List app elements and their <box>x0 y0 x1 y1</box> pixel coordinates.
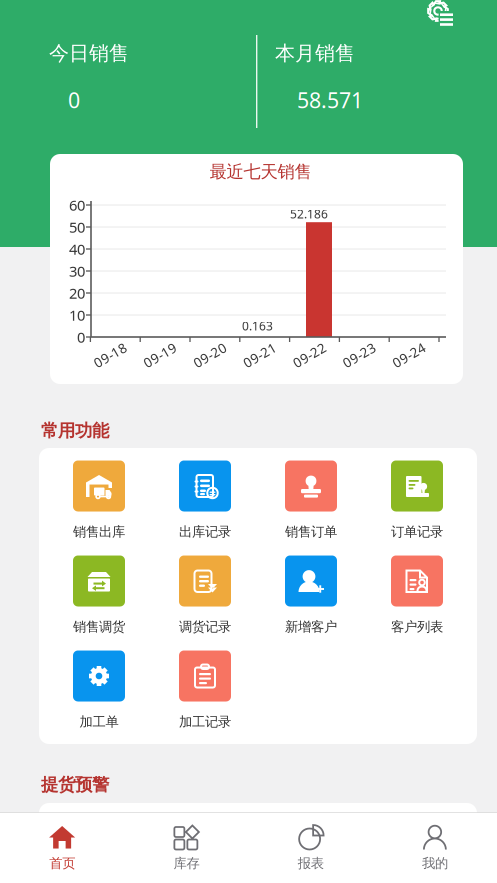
button[interactable]: 订单记录 <box>364 460 470 555</box>
staticText: 58.571 <box>297 86 363 114</box>
button[interactable]: 加工记录 <box>152 650 258 745</box>
button[interactable]: 出库记录 <box>152 460 258 555</box>
staticText: 09-18 <box>92 346 128 364</box>
staticText: 09-23 <box>341 346 377 364</box>
button[interactable]: 首页 <box>0 813 124 883</box>
staticText: 销售调货 <box>73 618 125 635</box>
staticText: 40 <box>69 239 85 259</box>
staticText: 销售出库 <box>73 523 125 540</box>
staticText: 10 <box>69 305 85 325</box>
button[interactable]: 销售出库 <box>46 460 152 555</box>
staticText: 09-22 <box>291 346 327 364</box>
staticText: 0 <box>68 86 80 114</box>
staticText: 0 <box>77 327 85 347</box>
staticText: 30 <box>69 261 85 281</box>
staticText: 订单记录 <box>391 523 443 540</box>
staticText: 加工单 <box>79 713 118 730</box>
staticText: 库存 <box>173 855 199 871</box>
button[interactable]: Settings <box>427 0 453 26</box>
button[interactable]: 调货记录 <box>152 555 258 650</box>
button[interactable]: 加工单 <box>46 650 152 745</box>
staticText: 20 <box>69 283 85 303</box>
staticText: 52.186 <box>290 206 328 222</box>
staticText: 0.163 <box>242 318 273 334</box>
button[interactable]: 销售调货 <box>46 555 152 650</box>
staticText: 出库记录 <box>179 523 231 540</box>
staticText: 50 <box>69 217 85 237</box>
staticText: 09-20 <box>192 346 228 364</box>
staticText: 本月销售 <box>275 41 355 66</box>
staticText: 调货记录 <box>179 618 231 635</box>
staticText: 报表 <box>298 855 324 871</box>
staticText: 09-24 <box>391 346 427 364</box>
staticText: 加工记录 <box>179 713 231 730</box>
button[interactable]: 新增客户 <box>258 555 364 650</box>
staticText: 最近七天销售 <box>209 161 311 182</box>
button[interactable]: 我的 <box>373 813 497 883</box>
staticText: 首页 <box>49 855 75 871</box>
staticText: 常用功能 <box>41 420 109 441</box>
staticText: 今日销售 <box>49 41 129 66</box>
staticText: 提货预警 <box>41 774 109 795</box>
button[interactable]: 客户列表 <box>364 555 470 650</box>
staticText: 销售订单 <box>285 523 337 540</box>
button[interactable]: 报表 <box>248 813 373 883</box>
staticText: 09-19 <box>142 346 178 364</box>
staticText: 客户列表 <box>391 618 443 635</box>
button[interactable]: 库存 <box>124 813 248 883</box>
staticText: 60 <box>69 195 85 215</box>
staticText: 新增客户 <box>285 618 337 635</box>
button[interactable]: 销售订单 <box>258 460 364 555</box>
staticText: 09-21 <box>242 346 278 364</box>
staticText: 我的 <box>422 855 448 871</box>
